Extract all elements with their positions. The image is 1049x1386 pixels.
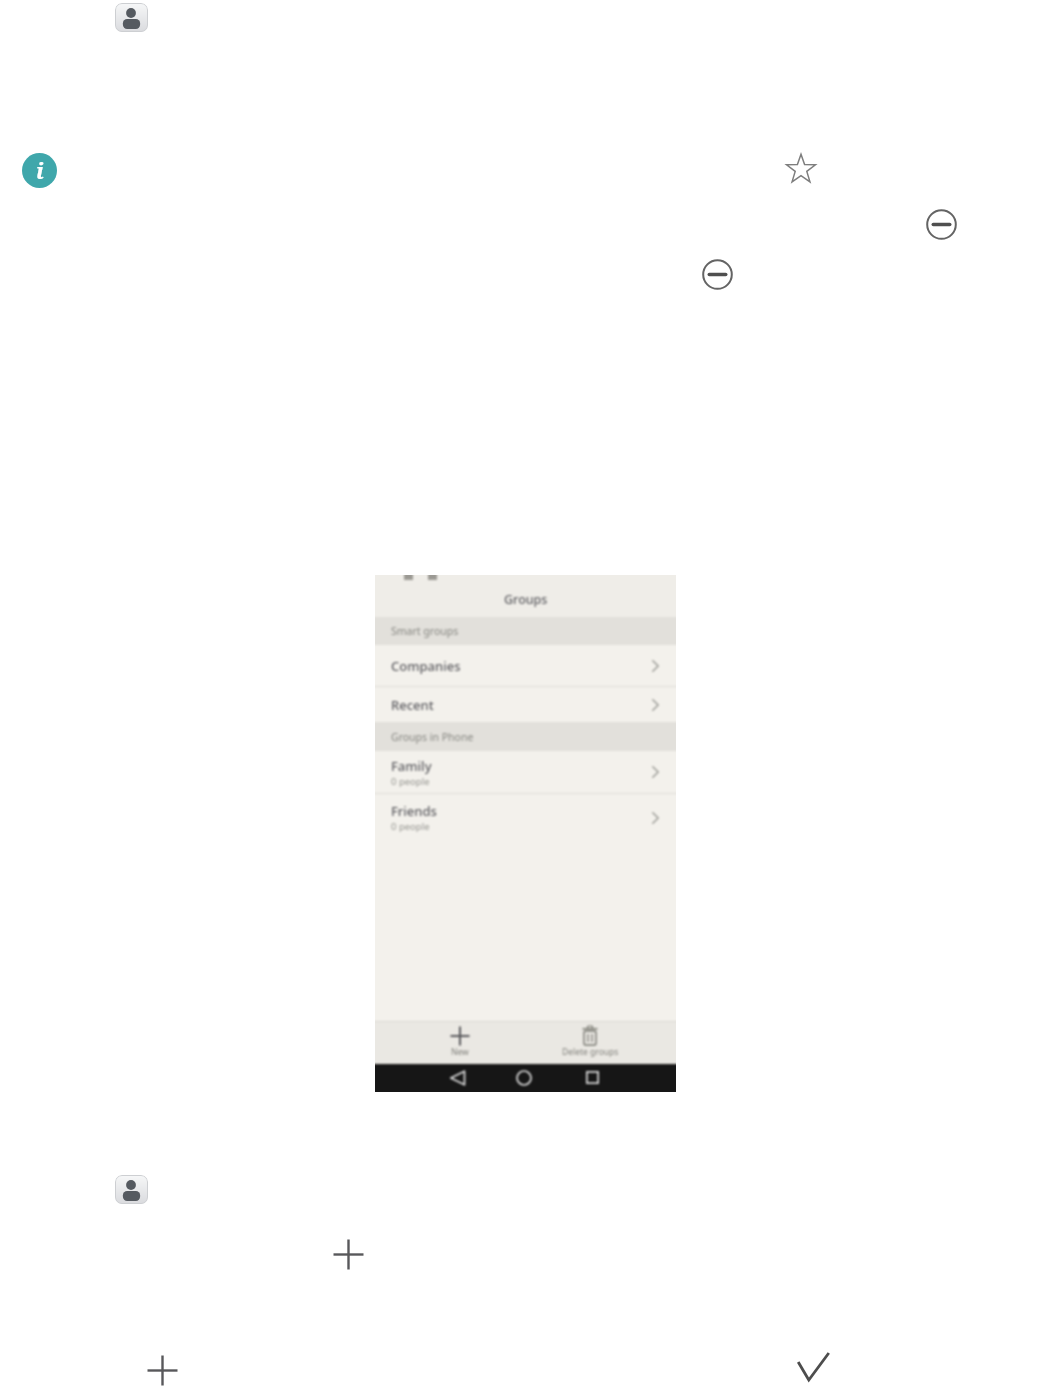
button[interactable]: Delete groups bbox=[560, 1026, 620, 1058]
button[interactable] bbox=[115, 3, 148, 32]
button[interactable] bbox=[702, 259, 733, 290]
staticText: Smart groups bbox=[391, 624, 459, 638]
button[interactable] bbox=[582, 1026, 598, 1046]
button[interactable] bbox=[586, 1071, 599, 1084]
button[interactable]: Companies bbox=[375, 645, 676, 686]
button[interactable] bbox=[516, 1070, 532, 1086]
staticText: Groups in Phone bbox=[391, 730, 474, 744]
button[interactable] bbox=[449, 1070, 466, 1086]
staticText: i bbox=[36, 155, 44, 185]
staticText: Delete groups bbox=[562, 1046, 619, 1058]
staticText: 0 people bbox=[391, 820, 430, 833]
staticText: 0 people bbox=[391, 775, 430, 788]
button[interactable]: Family bbox=[375, 751, 676, 793]
button[interactable] bbox=[450, 1026, 470, 1046]
button[interactable] bbox=[115, 1175, 148, 1204]
staticText: Recent bbox=[391, 696, 434, 714]
button[interactable] bbox=[147, 1355, 178, 1386]
staticText: Groups bbox=[504, 591, 548, 608]
button[interactable]: i bbox=[22, 153, 57, 188]
button[interactable]: Friends bbox=[375, 793, 676, 841]
button[interactable] bbox=[785, 153, 817, 185]
button[interactable] bbox=[926, 209, 957, 240]
staticText: Companies bbox=[391, 657, 461, 675]
staticText: Family bbox=[391, 757, 432, 775]
button[interactable] bbox=[797, 1351, 830, 1382]
button[interactable]: New bbox=[430, 1026, 490, 1058]
staticText: Friends bbox=[391, 802, 437, 820]
button[interactable]: Recent bbox=[375, 686, 676, 722]
button[interactable] bbox=[333, 1239, 364, 1270]
staticText: New bbox=[451, 1046, 469, 1058]
